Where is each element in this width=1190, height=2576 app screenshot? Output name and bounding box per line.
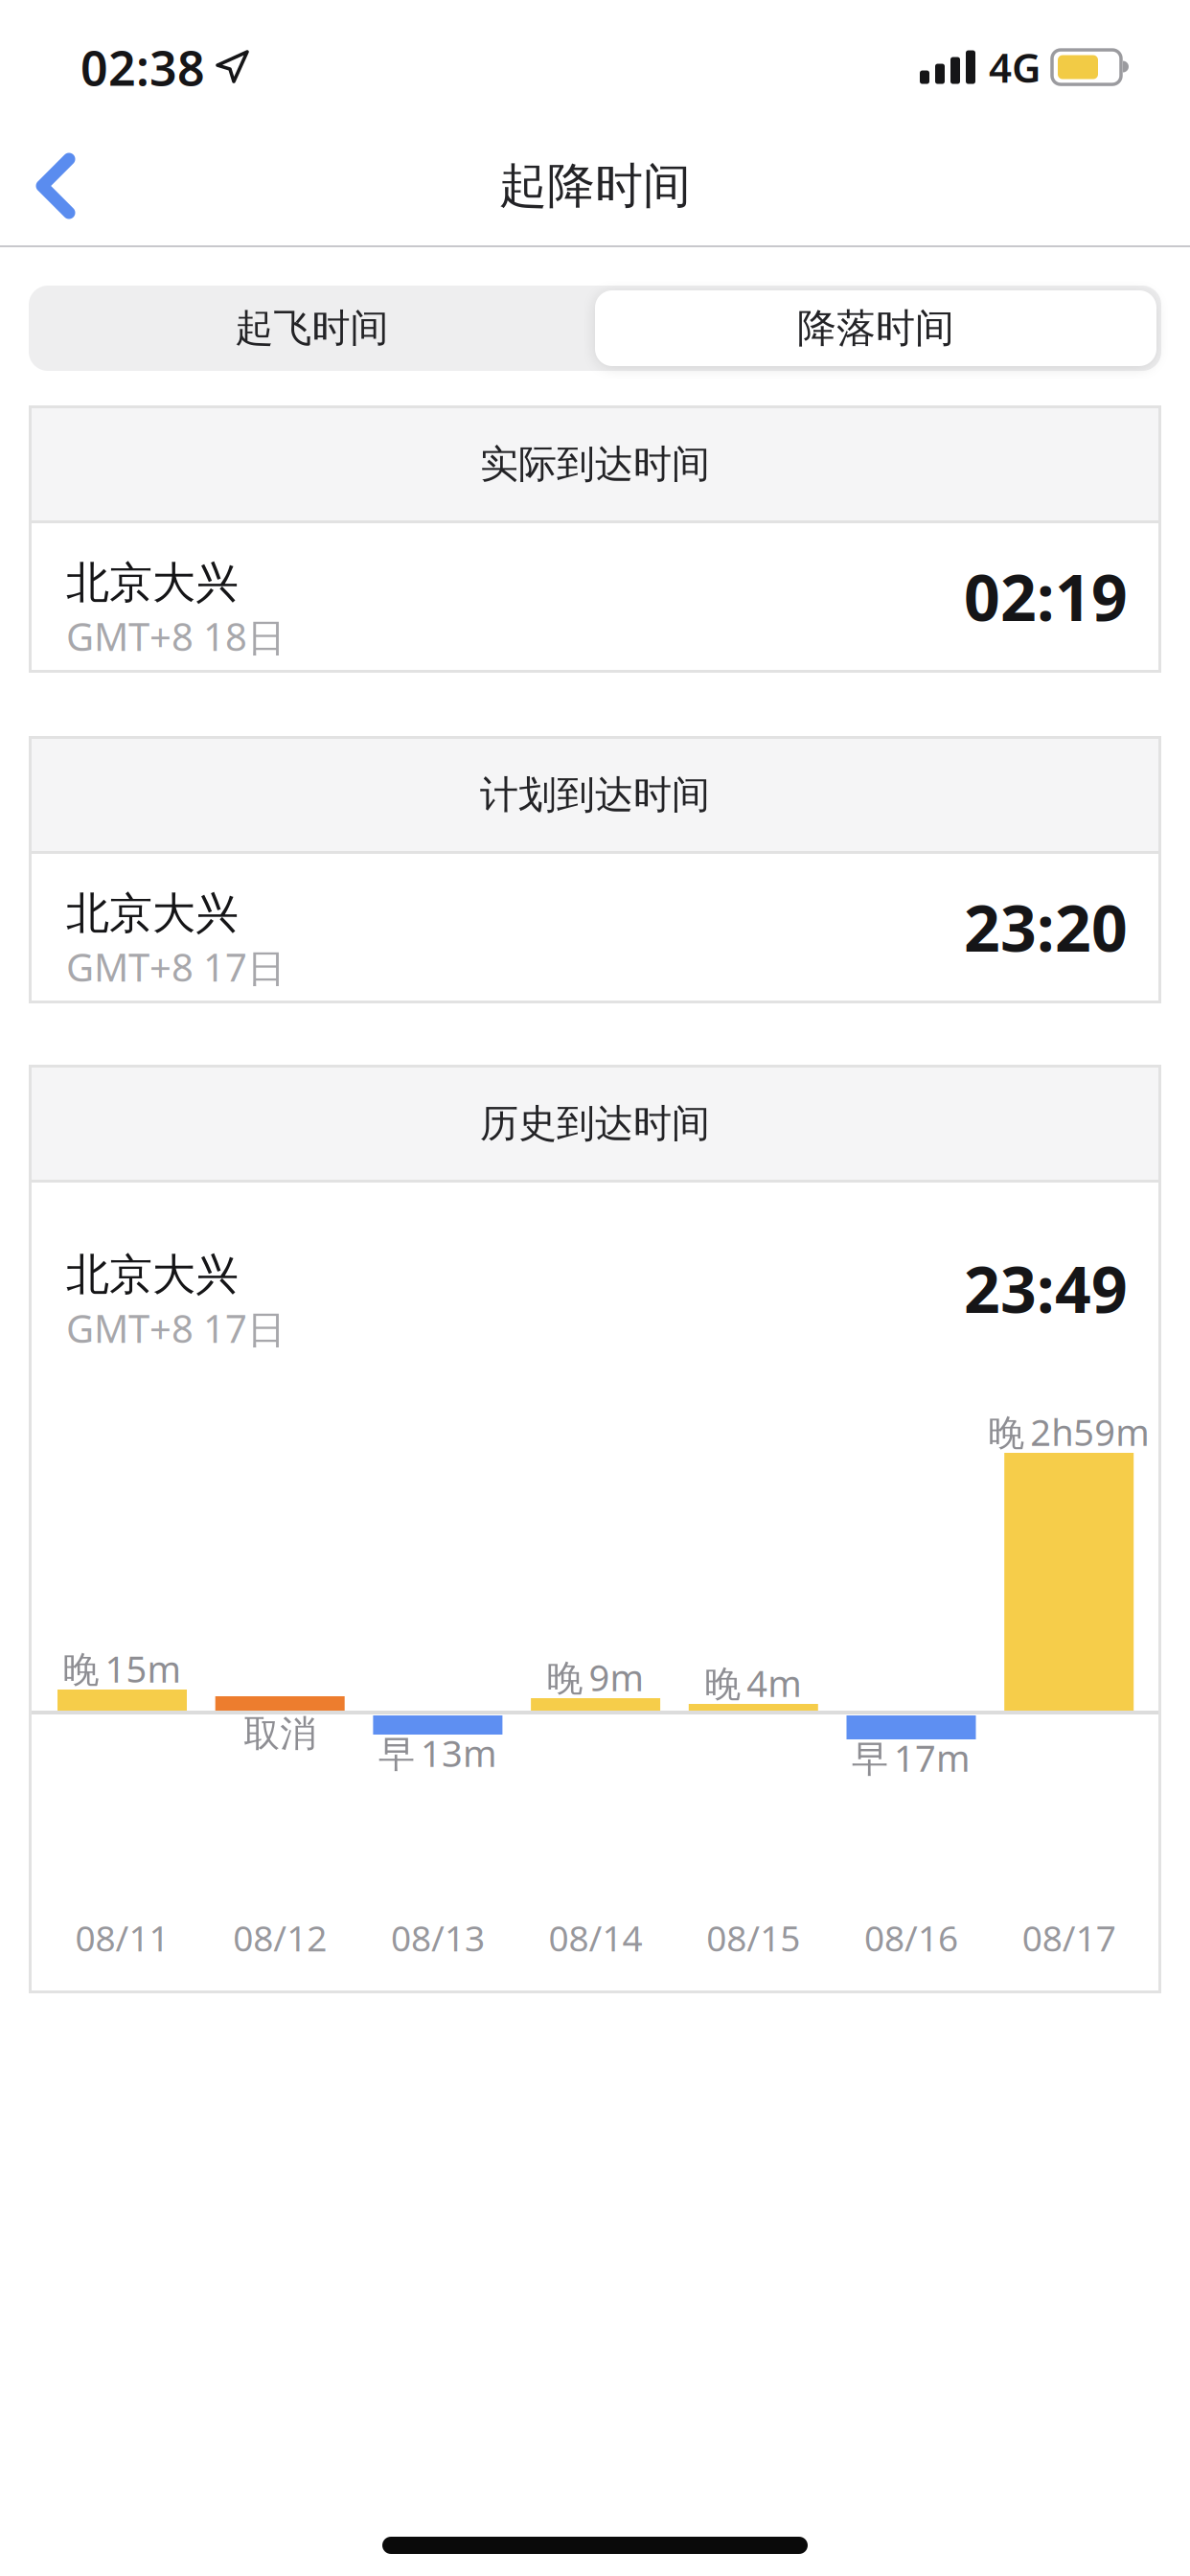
staticText: 北京大兴 xyxy=(66,1248,239,1302)
staticText: 23:49 xyxy=(964,1245,1128,1332)
staticText: 起飞时间 xyxy=(235,304,389,352)
staticText: 起降时间 xyxy=(499,156,691,216)
staticText: GMT+8 18日 xyxy=(66,610,286,662)
staticText: 早 13m xyxy=(378,1728,497,1778)
staticText: GMT+8 17日 xyxy=(66,941,286,993)
staticText: 23:20 xyxy=(964,884,1128,970)
staticText: 取消 xyxy=(244,1711,316,1757)
staticText: 08/16 xyxy=(864,1914,958,1962)
staticText: 历史到达时间 xyxy=(480,1099,710,1148)
staticText: 晚 4m xyxy=(705,1658,802,1708)
staticText: 08/14 xyxy=(549,1914,643,1962)
staticText: GMT+8 17日 xyxy=(66,1302,286,1354)
staticText: 08/11 xyxy=(75,1914,169,1962)
staticText: 晚 2h59m xyxy=(988,1407,1150,1457)
staticText: 计划到达时间 xyxy=(480,771,710,819)
staticText: 02:38 xyxy=(80,34,205,100)
staticText: 北京大兴 xyxy=(66,556,239,610)
staticText: 晚 9m xyxy=(547,1652,644,1702)
staticText: 降落时间 xyxy=(797,304,954,353)
staticText: 08/13 xyxy=(391,1914,485,1962)
staticText: 实际到达时间 xyxy=(480,440,710,488)
button[interactable]: 降落时间 xyxy=(595,290,1161,366)
staticText: 08/12 xyxy=(233,1914,327,1962)
staticText: 02:19 xyxy=(964,554,1128,640)
staticText: 北京大兴 xyxy=(66,886,239,941)
button[interactable]: 起飞时间 xyxy=(29,286,595,371)
button[interactable]: Back xyxy=(0,137,102,235)
staticText: 08/15 xyxy=(706,1914,800,1962)
staticText: 晚 15m xyxy=(63,1644,182,1693)
staticText: 早 17m xyxy=(852,1733,971,1782)
staticText: 4G xyxy=(989,40,1041,94)
staticText: 08/17 xyxy=(1022,1914,1116,1962)
